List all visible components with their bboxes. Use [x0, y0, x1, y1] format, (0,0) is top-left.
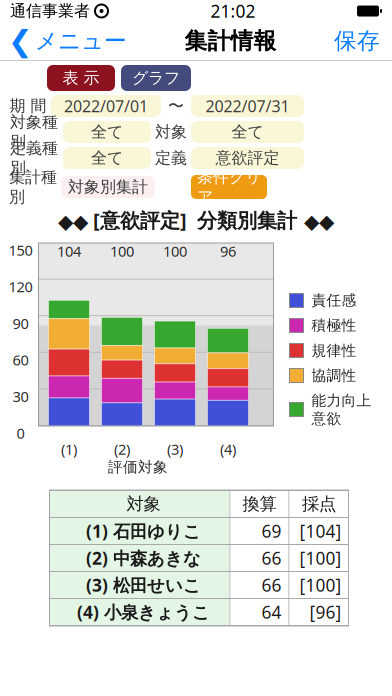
staticText: [96] [309, 600, 341, 623]
staticText: メニュー [35, 27, 127, 55]
staticText: 2022/07/01 [64, 95, 148, 117]
staticText: 〜 [168, 96, 184, 116]
staticText: 全て [231, 122, 263, 142]
staticText: 意欲評定 [215, 148, 279, 168]
staticText: 69 [261, 519, 281, 542]
staticText: 66 [261, 546, 281, 569]
button[interactable]: 保存 [334, 23, 392, 59]
staticText: 責任感 [311, 291, 356, 309]
staticText: 期 間 [9, 96, 46, 116]
button[interactable]: 2022/07/31 [191, 95, 304, 117]
button[interactable]: ❮ [0, 23, 127, 59]
staticText: (4) 小泉きょうこ [77, 600, 210, 623]
staticText: 定義種別 [10, 138, 58, 178]
staticText: 規律性 [311, 341, 356, 359]
button[interactable]: 全て [191, 121, 304, 143]
staticText: 集計情報 [184, 27, 276, 55]
staticText: [100] [299, 546, 341, 569]
staticText: 104 [57, 241, 81, 261]
staticText: 30 [12, 387, 28, 406]
staticText: 対象 [155, 122, 187, 142]
staticText: (4) [220, 439, 236, 459]
button[interactable]: 全て [63, 121, 151, 143]
staticText: 採点 [302, 493, 336, 515]
staticText: 表 示 [62, 68, 99, 88]
staticText: 全て [91, 122, 123, 142]
staticText: 保存 [334, 27, 380, 55]
staticText: 全て [91, 148, 123, 168]
staticText: 66 [261, 573, 281, 596]
staticText: [100] [299, 573, 341, 596]
button[interactable]: 表 示 [47, 65, 115, 91]
staticText: (3) 松田せいこ [86, 573, 201, 596]
staticText: ◆◆ [意欲評定] 分類別集計 ◆◆ [58, 207, 334, 233]
staticText: 能力向上意欲 [311, 391, 371, 427]
staticText: 21:02 [210, 0, 255, 22]
staticText: 対象種別 [10, 112, 58, 152]
staticText: (1) 石田ゆりこ [86, 519, 201, 542]
staticText: (1) [61, 439, 77, 459]
staticText: (3) [167, 439, 183, 459]
staticText: 90 [12, 313, 28, 333]
staticText: 2022/07/31 [205, 95, 289, 117]
staticText: 評価対象 [108, 458, 168, 476]
staticText: 120 [8, 277, 32, 296]
staticText: 100 [110, 241, 134, 261]
staticText: 協調性 [311, 366, 356, 384]
staticText: 条件クリア [197, 167, 261, 207]
staticText: 換算 [242, 493, 276, 515]
staticText: グラフ [132, 68, 180, 88]
staticText: (2) [114, 439, 130, 459]
button[interactable]: 条件クリア [191, 175, 267, 199]
staticText: 100 [163, 241, 187, 261]
staticText: 0 [16, 423, 24, 443]
staticText: ❮ [8, 24, 33, 58]
staticText: 定義 [155, 148, 187, 168]
button[interactable]: 意欲評定 [191, 147, 304, 169]
staticText: (2) 中森あきな [86, 546, 201, 569]
staticText: [104] [299, 519, 341, 542]
staticText: 64 [261, 600, 281, 623]
staticText: 150 [8, 240, 32, 260]
staticText: 集計種別 [9, 167, 57, 207]
button[interactable]: 対象別集計 [61, 176, 155, 198]
button[interactable]: 2022/07/01 [51, 95, 161, 117]
staticText: 対象 [126, 493, 160, 515]
staticText: 96 [220, 241, 236, 261]
staticText: 60 [12, 350, 28, 370]
staticText: 通信事業者 [10, 1, 90, 21]
button[interactable]: グラフ [121, 65, 191, 91]
staticText: 積極性 [311, 316, 356, 334]
staticText: 対象別集計 [68, 177, 148, 197]
button[interactable]: 全て [63, 147, 151, 169]
